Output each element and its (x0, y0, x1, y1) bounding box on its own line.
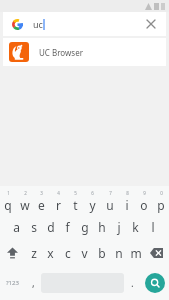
staticText: s (31, 219, 37, 235)
button[interactable]: 1 (0, 189, 16, 214)
button[interactable]: k (127, 214, 144, 240)
staticText: ?123 (6, 279, 19, 287)
button[interactable]: UC Browser (3, 38, 166, 66)
staticText: 1 (7, 190, 10, 196)
button[interactable]: 7 (101, 189, 118, 214)
button[interactable]: , (25, 266, 41, 300)
staticText: . (131, 276, 134, 290)
button[interactable]: s (25, 214, 42, 240)
button[interactable]: h (93, 214, 110, 240)
button[interactable]: x (42, 240, 59, 266)
staticText: b (98, 245, 106, 261)
button[interactable]: Backspace (144, 240, 169, 266)
staticText: a (13, 219, 20, 235)
staticText: k (132, 219, 139, 235)
staticText: 0 (160, 190, 163, 196)
button[interactable]: a (8, 214, 25, 240)
staticText: 5 (74, 190, 77, 196)
button[interactable]: . (124, 266, 140, 300)
button[interactable]: v (76, 240, 93, 266)
button[interactable]: 6 (84, 189, 101, 214)
button[interactable]: Shift (0, 240, 25, 266)
staticText: g (81, 219, 89, 235)
button[interactable]: 0 (152, 189, 169, 214)
button[interactable]: Clear search (140, 13, 162, 35)
staticText: e (38, 197, 45, 213)
button[interactable]: uc (3, 12, 166, 36)
button[interactable]: z (25, 240, 42, 266)
button[interactable]: 3 (33, 189, 50, 214)
staticText: 3 (40, 190, 43, 196)
button[interactable]: 5 (67, 189, 84, 214)
button[interactable]: n (110, 240, 127, 266)
staticText: 7 (109, 190, 112, 196)
button[interactable]: b (93, 240, 110, 266)
staticText: p (157, 197, 165, 213)
button[interactable]: 9 (135, 189, 152, 214)
staticText: uc (33, 18, 43, 30)
staticText: 4 (57, 190, 60, 196)
staticText: 9 (143, 190, 146, 196)
staticText: u (106, 197, 114, 213)
staticText: h (98, 219, 106, 235)
staticText: w (20, 197, 30, 213)
staticText: m (130, 245, 142, 261)
button[interactable]: 8 (118, 189, 135, 214)
staticText: f (65, 219, 70, 235)
staticText: z (31, 245, 37, 261)
staticText: x (47, 245, 54, 261)
button[interactable]: c (59, 240, 76, 266)
staticText: j (117, 219, 121, 235)
staticText: o (140, 197, 148, 213)
button[interactable]: Search (140, 266, 169, 300)
staticText: q (4, 197, 12, 213)
staticText: UC Browser (39, 47, 83, 58)
staticText: 2 (24, 190, 27, 196)
staticText: i (125, 197, 129, 213)
staticText: y (89, 197, 96, 213)
button[interactable]: l (144, 214, 161, 240)
button[interactable]: f (59, 214, 76, 240)
staticText: v (81, 245, 88, 261)
button[interactable]: g (76, 214, 93, 240)
staticText: d (47, 219, 55, 235)
staticText: n (115, 245, 123, 261)
staticText: , (32, 276, 35, 290)
staticText: l (151, 219, 155, 235)
button[interactable]: d (42, 214, 59, 240)
staticText: t (73, 197, 78, 213)
staticText: 8 (126, 190, 129, 196)
staticText: c (65, 245, 71, 261)
button[interactable]: m (127, 240, 144, 266)
button[interactable]: 4 (50, 189, 67, 214)
button[interactable]: 2 (16, 189, 33, 214)
button[interactable]: j (110, 214, 127, 240)
staticText: r (56, 197, 61, 213)
button[interactable]: ?123 (0, 266, 25, 300)
staticText: 6 (91, 190, 94, 196)
